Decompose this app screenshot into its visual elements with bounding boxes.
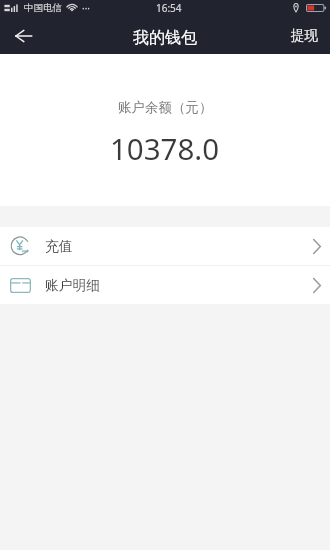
button[interactable]: Back: [0, 15, 46, 54]
staticText: 提现: [291, 27, 318, 44]
staticText: 账户明细: [45, 277, 101, 294]
button[interactable]: 提现: [279, 15, 330, 54]
staticText: 中国电信: [24, 2, 62, 14]
staticText: 充值: [45, 238, 73, 255]
staticText: 16:54: [156, 1, 182, 15]
staticText: 10378.0: [110, 128, 220, 168]
button[interactable]: 充值: [0, 227, 330, 265]
button[interactable]: 账户明细: [0, 266, 330, 304]
staticText: 我的钱包: [133, 28, 197, 48]
staticText: ···: [82, 1, 91, 15]
staticText: 账户余额（元）: [118, 99, 213, 116]
